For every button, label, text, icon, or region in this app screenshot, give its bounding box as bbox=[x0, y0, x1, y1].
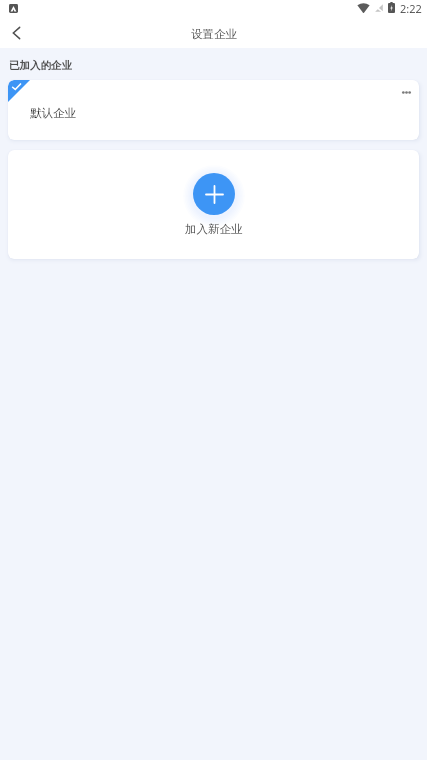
button[interactable]: 默认企业 bbox=[8, 80, 419, 140]
staticText: 加入新企业 bbox=[185, 222, 243, 236]
staticText: 默认企业 bbox=[30, 106, 76, 120]
button[interactable]: More options bbox=[394, 80, 419, 104]
button[interactable]: Back bbox=[0, 18, 34, 48]
button[interactable]: 加入新企业 bbox=[185, 168, 243, 236]
staticText: 设置企业 bbox=[191, 27, 237, 41]
staticText: 已加入的企业 bbox=[9, 59, 72, 72]
staticText: 2:22 bbox=[400, 1, 422, 16]
